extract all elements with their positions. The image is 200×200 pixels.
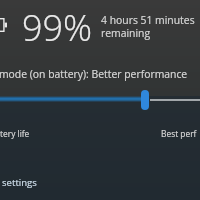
staticText: 4 hours 51 minutes remaining (101, 13, 200, 40)
staticText: tery life (0, 128, 30, 139)
button[interactable]: Power mode slider (0, 88, 200, 112)
staticText: mode (on battery): Better performance (0, 67, 188, 81)
staticText: 99% (22, 3, 93, 52)
staticText: Best perf (161, 128, 197, 139)
button[interactable]: settings (2, 176, 37, 189)
other: Battery (0, 18, 7, 32)
